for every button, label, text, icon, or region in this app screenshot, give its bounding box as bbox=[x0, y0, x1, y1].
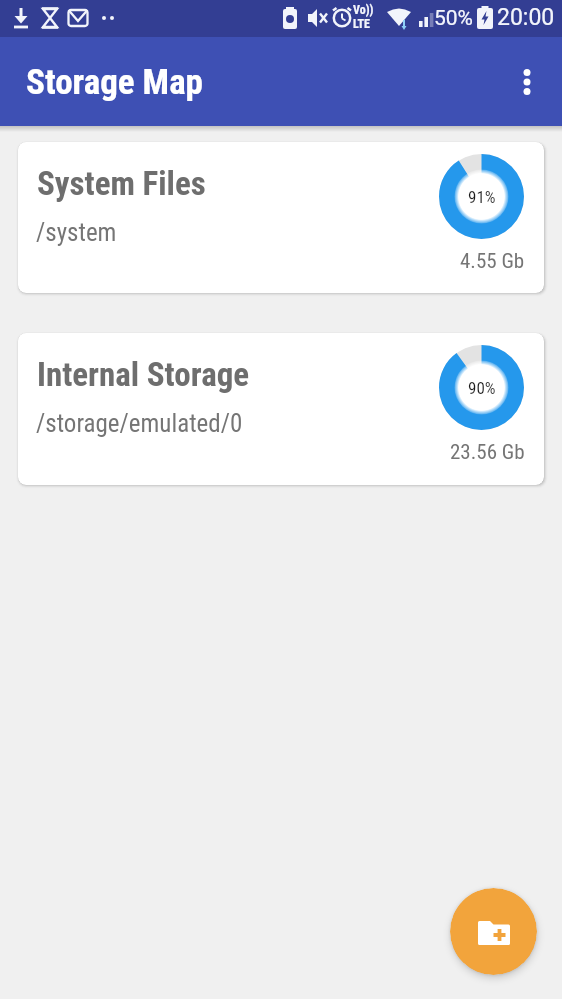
staticText: LTE bbox=[353, 17, 370, 31]
staticText: /system bbox=[36, 218, 117, 247]
button[interactable] bbox=[505, 60, 549, 104]
staticText: 90% bbox=[468, 378, 496, 398]
staticText: /storage/emulated/0 bbox=[36, 409, 243, 438]
button[interactable] bbox=[450, 888, 537, 975]
staticText: Vo)) bbox=[353, 3, 374, 17]
button[interactable]: Internal Storage bbox=[18, 333, 544, 485]
staticText: System Files bbox=[37, 164, 206, 203]
staticText: 23.56 Gb bbox=[450, 440, 525, 465]
staticText: Internal Storage bbox=[37, 355, 250, 394]
staticText: 20:00 bbox=[497, 4, 555, 31]
staticText: Storage Map bbox=[26, 62, 203, 103]
staticText: 4.55 Gb bbox=[460, 249, 525, 274]
staticText: 50% bbox=[434, 6, 473, 31]
button[interactable]: System Files bbox=[18, 142, 544, 293]
staticText: 91% bbox=[468, 187, 496, 207]
